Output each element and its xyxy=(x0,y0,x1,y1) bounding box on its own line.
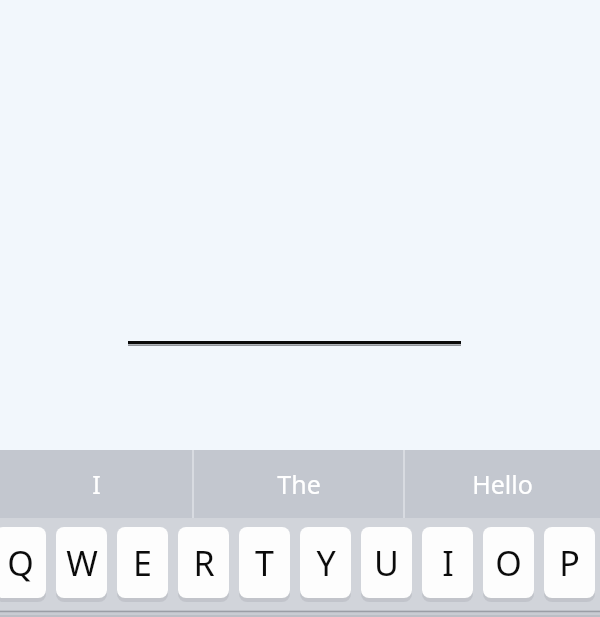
button[interactable]: O xyxy=(483,527,534,600)
staticText: P xyxy=(559,540,580,586)
staticText: Hello xyxy=(472,467,533,501)
button[interactable]: P xyxy=(544,527,595,600)
staticText: Q xyxy=(7,540,34,586)
button[interactable]: Y xyxy=(300,527,351,600)
button[interactable]: W xyxy=(56,527,107,600)
staticText: R xyxy=(193,540,215,586)
button[interactable] xyxy=(128,336,461,350)
button[interactable]: E xyxy=(117,527,168,600)
button[interactable]: R xyxy=(178,527,229,600)
button[interactable]: I xyxy=(422,527,473,600)
button[interactable]: U xyxy=(361,527,412,600)
staticText: W xyxy=(66,540,98,586)
staticText: I xyxy=(92,467,101,501)
button[interactable]: Q xyxy=(0,527,46,600)
button[interactable]: The xyxy=(194,450,403,518)
button[interactable]: T xyxy=(239,527,290,600)
staticText: O xyxy=(495,540,522,586)
staticText: The xyxy=(277,467,321,501)
staticText: I xyxy=(442,540,454,586)
button[interactable]: Hello xyxy=(405,450,600,518)
staticText: Y xyxy=(316,540,336,586)
staticText: U xyxy=(374,540,399,586)
staticText: E xyxy=(133,540,152,586)
button[interactable]: I xyxy=(0,450,192,518)
staticText: T xyxy=(255,540,274,586)
